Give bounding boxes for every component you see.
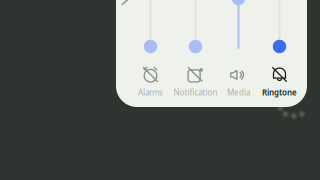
staticText: Notification [173, 87, 217, 98]
staticText: Ringtone [262, 87, 297, 98]
staticText: Media [227, 87, 250, 98]
staticText: Alarms [138, 87, 163, 98]
